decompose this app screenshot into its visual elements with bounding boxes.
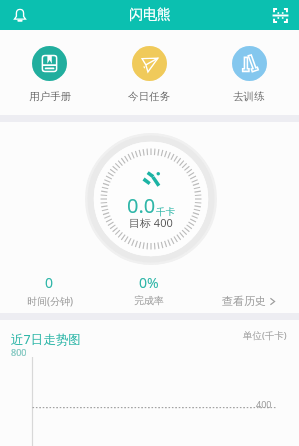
staticText: 去训练 (233, 90, 265, 103)
staticText: 查看历史 (222, 294, 266, 308)
staticText: 闪电熊 (129, 6, 171, 24)
button[interactable]: 用户手册 (0, 46, 99, 103)
button[interactable]: 今日任务 (99, 46, 199, 103)
staticText: 千卡 (156, 206, 175, 218)
staticText: 目标 400 (129, 215, 173, 230)
staticText: 0% (139, 273, 159, 292)
staticText: 800 (11, 346, 27, 358)
button[interactable]: Scan QR code (267, 2, 294, 29)
staticText: 单位(千卡) (243, 329, 287, 342)
staticText: 完成率 (134, 294, 164, 307)
button[interactable]: 去训练 (199, 46, 299, 103)
button[interactable]: Notifications (6, 2, 33, 29)
button[interactable]: 0% (99, 273, 199, 307)
button[interactable]: 0 (0, 273, 99, 308)
staticText: 今日任务 (128, 90, 170, 103)
staticText: 0 (45, 273, 54, 292)
staticText: 用户手册 (29, 90, 71, 103)
staticText: 时间(分钟) (27, 294, 73, 308)
staticText: 近7日走势图 (11, 331, 81, 348)
staticText: 0.0 (127, 192, 156, 219)
button[interactable]: 查看历史 (218, 290, 280, 312)
staticText: 400 (256, 398, 272, 410)
